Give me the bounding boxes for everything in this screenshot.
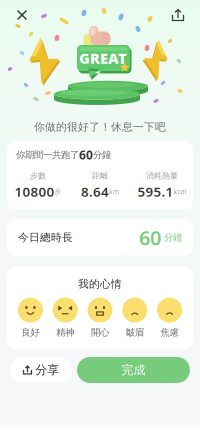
staticText: 60 [139, 224, 161, 251]
staticText: 595.1 [137, 183, 173, 200]
staticText: 8.64 [81, 183, 109, 200]
button[interactable]: Close [10, 3, 34, 27]
staticText: 步數 [30, 171, 46, 181]
staticText: kcal [173, 187, 186, 196]
staticText: 良好 [21, 327, 39, 338]
staticText: km [109, 187, 119, 196]
button[interactable]: 良好 [13, 298, 48, 338]
staticText: 10800 [14, 183, 54, 200]
staticText: 今日總時長 [18, 231, 73, 244]
staticText: 你做的很好了！休息一下吧 [34, 120, 166, 133]
staticText: 我的心情 [78, 277, 122, 291]
staticText: 皺眉 [126, 327, 144, 338]
button[interactable]: 分享 [10, 357, 72, 383]
staticText: 開心 [91, 327, 109, 338]
staticText: 60 [79, 147, 93, 163]
button[interactable]: 精神 [48, 298, 83, 338]
button[interactable]: 焦慮 [152, 298, 187, 338]
staticText: 消耗熱量 [146, 171, 178, 181]
staticText: 分鐘 [93, 149, 111, 161]
staticText: 焦慮 [161, 327, 179, 338]
button[interactable]: 皺眉 [117, 298, 152, 338]
staticText: 分享 [35, 363, 59, 377]
staticText: 距離 [92, 171, 108, 181]
staticText: 你期間一共跑了 [16, 149, 79, 161]
staticText: 精神 [56, 327, 74, 338]
staticText: 完成 [121, 363, 145, 377]
button[interactable]: 開心 [83, 298, 117, 338]
button[interactable]: Share [166, 3, 190, 27]
staticText: GREAT [79, 48, 127, 68]
button[interactable]: 完成 [77, 357, 190, 383]
staticText: 步 [54, 187, 61, 196]
staticText: 分鐘 [161, 232, 182, 243]
